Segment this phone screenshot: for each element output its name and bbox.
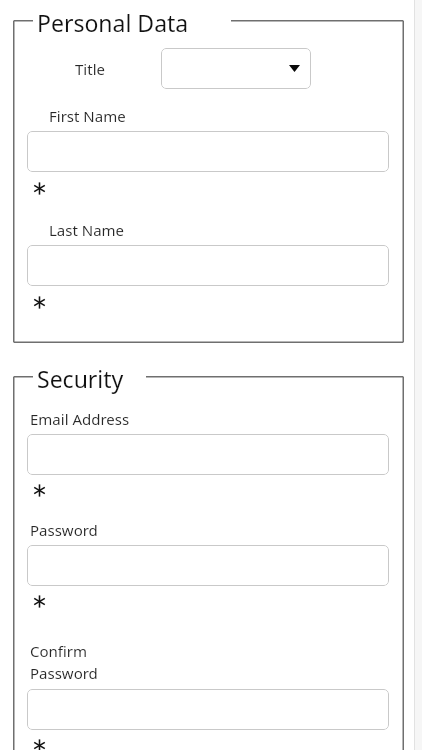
staticText: Personal Data <box>37 7 189 38</box>
staticText: Confirm <box>30 641 88 661</box>
staticText: First Name <box>49 106 126 126</box>
button[interactable]: Confirm Password <box>27 689 389 730</box>
button[interactable]: Title dropdown <box>161 48 311 89</box>
button[interactable]: First Name <box>27 131 389 172</box>
button[interactable]: Email Address <box>27 434 389 475</box>
staticText: Title <box>75 59 105 79</box>
staticText: Password <box>30 520 98 540</box>
button[interactable]: Password <box>27 545 389 586</box>
button[interactable]: Last Name <box>27 245 389 286</box>
staticText: Security <box>37 363 124 394</box>
staticText: Last Name <box>49 220 125 240</box>
staticText: Password <box>30 663 98 683</box>
staticText: Email Address <box>30 409 130 429</box>
